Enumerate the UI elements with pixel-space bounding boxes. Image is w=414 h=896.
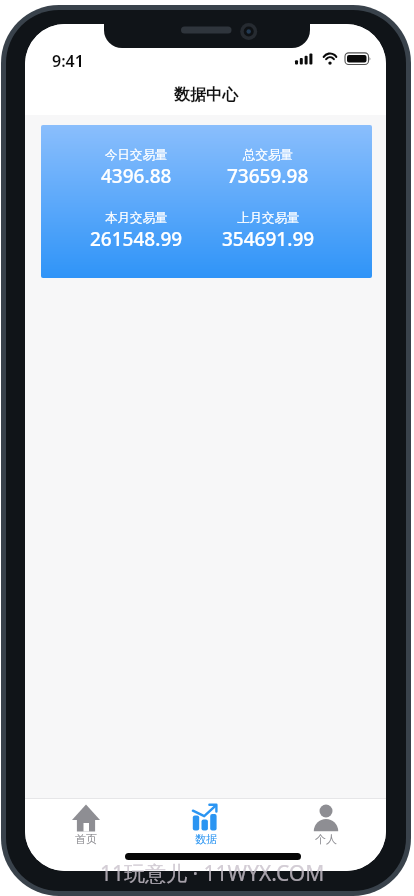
staticText: 9:41 (52, 50, 84, 69)
staticText: 今日交易量 (105, 147, 168, 163)
staticText: 数据 (195, 832, 217, 846)
staticText: 数据中心 (174, 85, 238, 105)
staticText: 总交易量 (243, 147, 293, 163)
staticText: 11玩意儿 · 11WYX.COM (100, 859, 325, 885)
staticText: 261548.99 (90, 226, 183, 252)
staticText: 首页 (75, 832, 97, 846)
button[interactable]: 数据 (146, 799, 266, 871)
staticText: 354691.99 (222, 226, 315, 252)
button[interactable]: 个人 (266, 799, 386, 871)
button[interactable]: 首页 (25, 799, 146, 871)
staticText: 本月交易量 (105, 210, 168, 226)
staticText: 4396.88 (101, 163, 172, 189)
staticText: 上月交易量 (237, 210, 300, 226)
staticText: 个人 (315, 832, 337, 846)
staticText: 73659.98 (227, 163, 309, 189)
